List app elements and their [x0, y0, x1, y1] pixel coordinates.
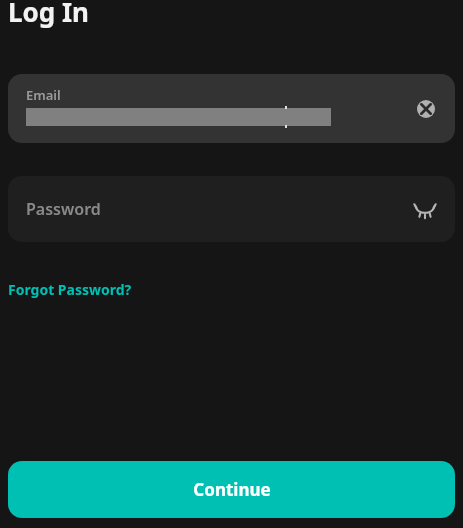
- staticText: Password: [26, 198, 101, 220]
- staticText: Forgot Password?: [8, 280, 132, 299]
- button[interactable]: Forgot Password?: [8, 278, 132, 301]
- staticText: Log In: [8, 0, 89, 29]
- button[interactable]: Continue: [8, 461, 455, 518]
- staticText: Email: [26, 86, 61, 104]
- button[interactable]: Show password: [409, 193, 441, 225]
- button[interactable]: Password: [8, 176, 455, 242]
- button[interactable]: Email: [8, 74, 455, 143]
- staticText: Continue: [193, 478, 271, 501]
- button[interactable]: Clear email: [413, 96, 439, 122]
